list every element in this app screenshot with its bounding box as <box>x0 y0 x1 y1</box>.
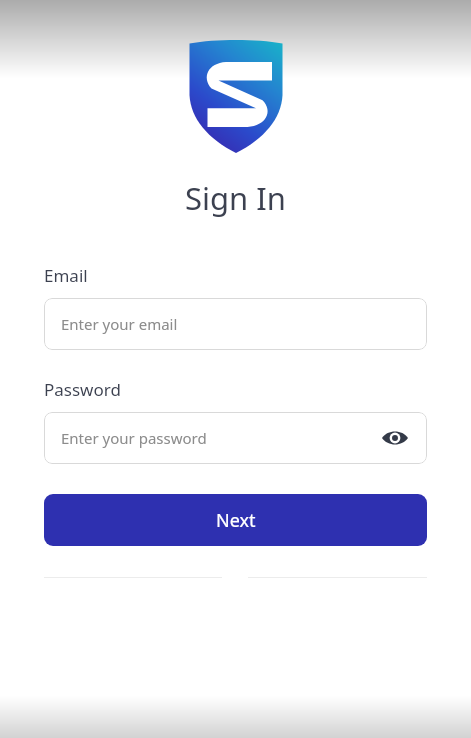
staticText: Email <box>44 264 88 287</box>
staticText: Sign In <box>185 177 286 219</box>
button[interactable]: Enter your password <box>44 412 427 464</box>
button[interactable]: Next <box>44 494 427 546</box>
staticText: Enter your password <box>61 428 380 448</box>
button[interactable]: Enter your email <box>44 298 427 350</box>
staticText: Enter your email <box>61 314 410 334</box>
button[interactable]: Show password <box>380 423 410 453</box>
staticText: Password <box>44 378 121 401</box>
staticText: Next <box>216 508 256 533</box>
